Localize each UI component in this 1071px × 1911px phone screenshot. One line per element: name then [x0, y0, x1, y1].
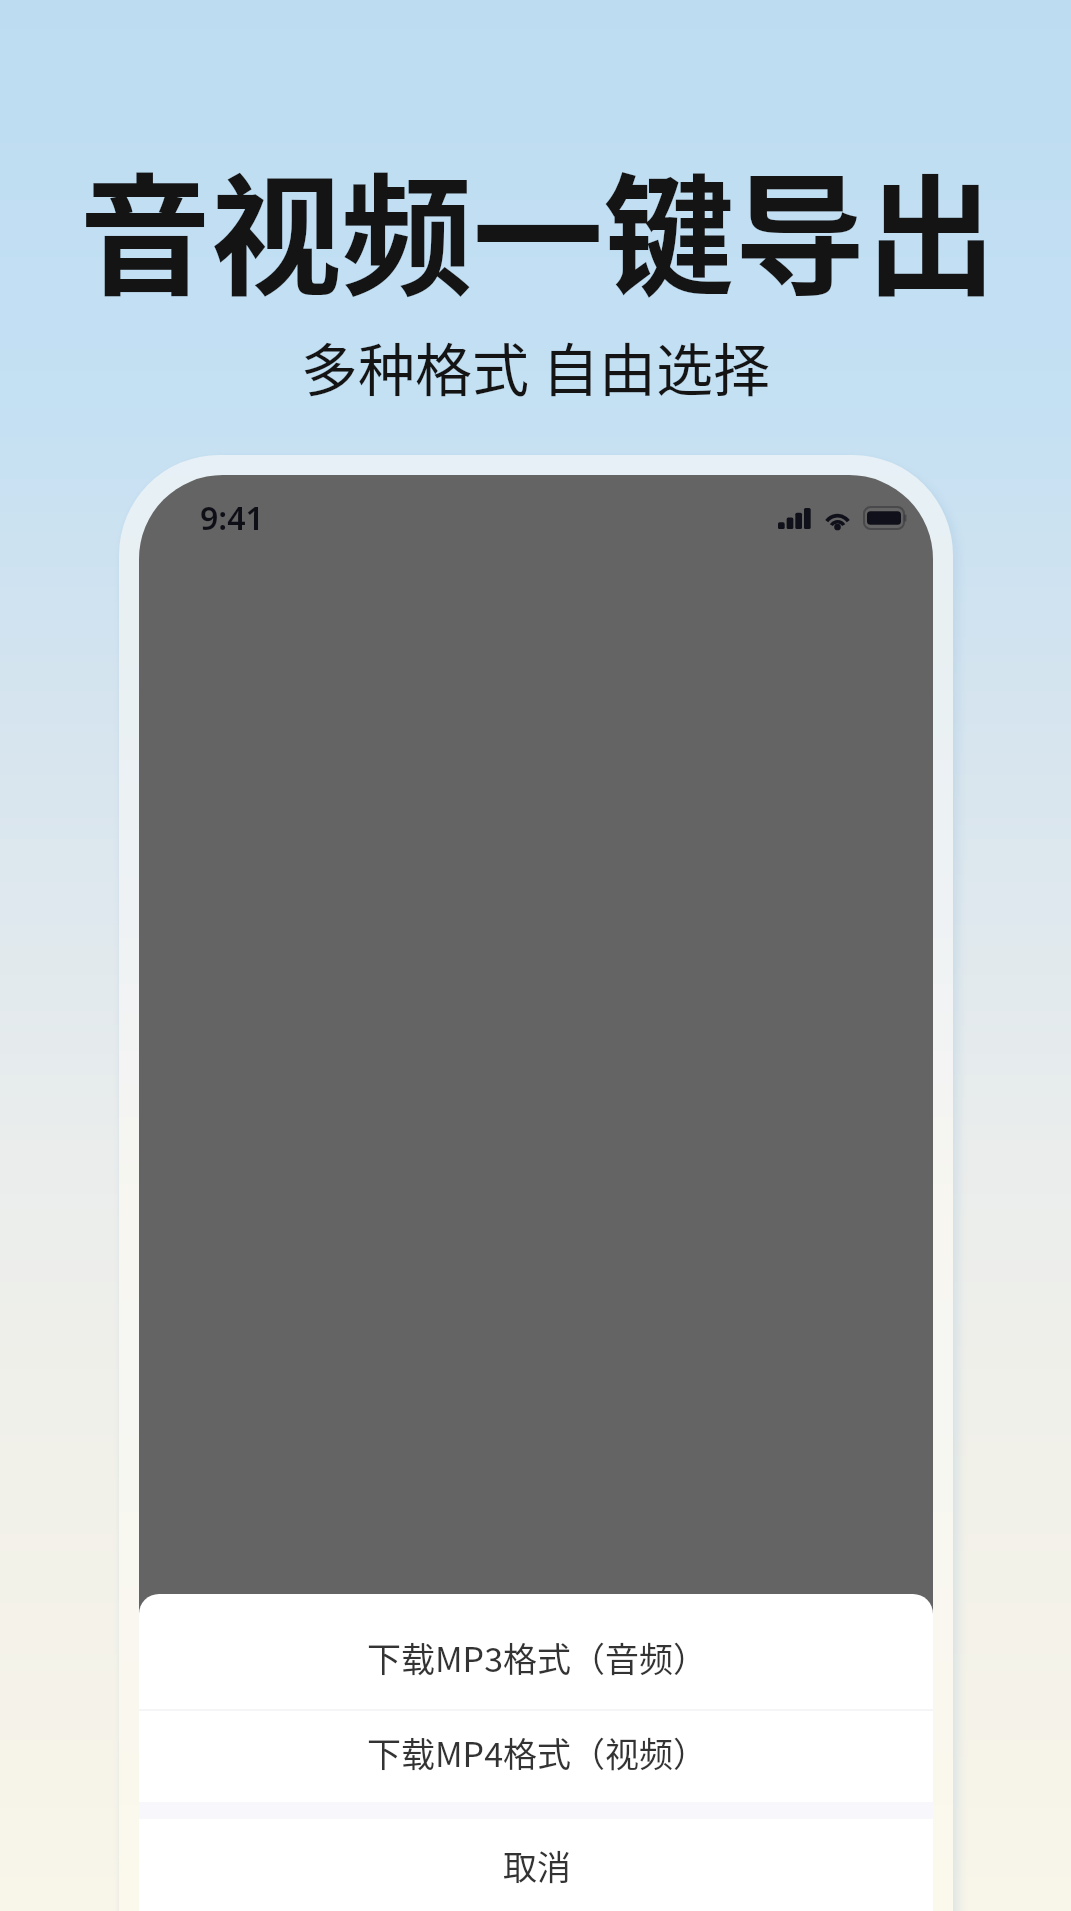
other: Cellular signal strength [778, 508, 812, 529]
button[interactable]: 取消 [139, 1819, 933, 1911]
other: Battery full [864, 507, 907, 529]
staticText: 多种格式 自由选择 [301, 325, 770, 408]
staticText: 9:41 [200, 496, 264, 540]
other: Wi-Fi connected [822, 507, 853, 529]
staticText: 下载MP3格式（音频） [367, 1633, 707, 1682]
button[interactable]: 下载MP3格式（音频） [139, 1594, 933, 1709]
staticText: 音视频一键导出 [79, 132, 997, 322]
button[interactable]: 下载MP4格式（视频） [139, 1711, 933, 1802]
staticText: 下载MP4格式（视频） [367, 1728, 707, 1777]
staticText: 取消 [503, 1841, 571, 1890]
